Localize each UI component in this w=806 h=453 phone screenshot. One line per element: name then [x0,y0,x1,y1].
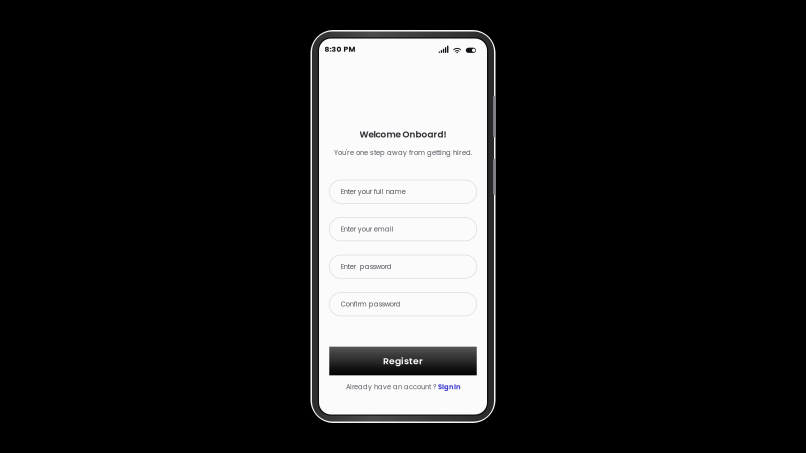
staticText: Welcome Onboard! [359,128,446,141]
button[interactable]: Register [329,347,477,375]
staticText: Enter password [341,262,392,271]
staticText: 8:30 PM [324,44,355,54]
staticText: Sign in [438,382,460,392]
staticText: You're one step away from getting hired. [334,148,472,157]
staticText: Already have an account ? [346,382,436,392]
button[interactable]: Confirm password [329,292,477,316]
staticText: Enter your email [341,224,394,234]
button[interactable]: Already have an account ? [346,383,460,390]
staticText: Register [383,355,423,367]
button[interactable]: Enter your full name [329,180,477,203]
staticText: Enter your full name [341,187,406,196]
staticText: Confirm password [341,299,401,309]
button[interactable]: Enter your email [329,217,477,241]
button[interactable]: Enter password [329,255,477,278]
